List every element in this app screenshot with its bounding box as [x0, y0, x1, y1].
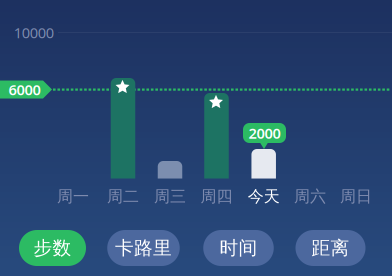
staticText: 周六 [294, 187, 326, 206]
button[interactable]: 时间 [203, 230, 274, 266]
button[interactable]: 卡路里 [107, 230, 180, 266]
button[interactable]: 步数 [19, 230, 86, 266]
staticText: 周日 [340, 187, 372, 206]
staticText: 周一 [57, 187, 89, 206]
staticText: 距离 [311, 236, 349, 259]
staticText: 时间 [219, 236, 257, 259]
staticText: 卡路里 [115, 236, 172, 259]
staticText: 周三 [154, 187, 186, 206]
staticText: 步数 [33, 236, 71, 259]
staticText: 周四 [200, 187, 232, 206]
staticText: 6000 [8, 80, 40, 99]
staticText: 今天 [248, 187, 280, 206]
staticText: 10000 [14, 23, 54, 42]
button[interactable]: 距离 [295, 230, 365, 266]
staticText: 2000 [248, 123, 280, 143]
staticText: 周二 [107, 187, 139, 206]
